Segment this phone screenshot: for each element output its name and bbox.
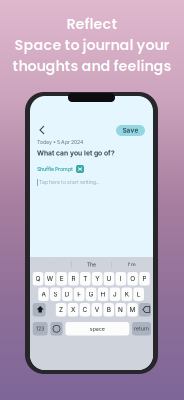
button[interactable]: K xyxy=(121,287,132,301)
staticText: The xyxy=(87,261,96,268)
staticText: space xyxy=(90,326,105,332)
button[interactable]: Shift xyxy=(33,303,46,316)
button[interactable]: Save xyxy=(116,125,145,136)
staticText: E xyxy=(60,275,64,283)
staticText: Save xyxy=(122,127,138,134)
staticText: Space to journal your xyxy=(14,35,169,55)
button[interactable]: M xyxy=(127,303,138,316)
button[interactable]: V xyxy=(91,303,102,316)
button[interactable]: G xyxy=(86,287,96,301)
staticText: H xyxy=(100,290,105,298)
button[interactable]: T xyxy=(80,272,91,285)
staticText: I xyxy=(50,261,51,268)
staticText: L xyxy=(137,290,141,298)
staticText: Reflect xyxy=(66,14,117,34)
staticText: 123 xyxy=(36,326,44,332)
staticText: P xyxy=(142,275,146,283)
button[interactable]: P xyxy=(139,272,150,285)
staticText: I'm xyxy=(128,261,136,268)
staticText: N xyxy=(118,306,123,314)
staticText: thoughts and feelings xyxy=(12,56,171,76)
button[interactable]: L xyxy=(133,287,144,301)
staticText: V xyxy=(95,306,99,314)
button[interactable]: E xyxy=(56,272,67,285)
staticText: A xyxy=(41,290,45,298)
staticText: return xyxy=(134,326,149,332)
button[interactable]: Z xyxy=(56,303,66,316)
button[interactable]: return xyxy=(132,322,151,335)
staticText: T xyxy=(83,275,87,283)
button[interactable]: space xyxy=(65,322,129,335)
staticText: Y xyxy=(95,275,99,283)
button[interactable]: Y xyxy=(92,272,102,285)
button[interactable]: S xyxy=(50,287,61,301)
staticText: Tap here to start writing... xyxy=(39,179,99,185)
button[interactable]: I xyxy=(115,272,126,285)
staticText: Today • 5 Apr 2024 xyxy=(37,139,83,145)
staticText: I xyxy=(120,275,122,283)
staticText: O xyxy=(130,275,135,283)
staticText: What can you let go of? xyxy=(37,149,115,157)
button[interactable]: D xyxy=(62,287,73,301)
button[interactable]: H xyxy=(98,287,108,301)
button[interactable]: C xyxy=(80,303,90,316)
button[interactable]: N xyxy=(115,303,126,316)
button[interactable]: W xyxy=(44,272,55,285)
staticText: X xyxy=(71,306,75,314)
button[interactable]: 123 xyxy=(33,322,48,335)
button[interactable]: O xyxy=(127,272,138,285)
staticText: C xyxy=(82,306,87,314)
button[interactable]: Q xyxy=(33,272,43,285)
button[interactable]: A xyxy=(38,287,49,301)
staticText: M xyxy=(129,306,135,314)
button[interactable]: B xyxy=(103,303,114,316)
button[interactable]: R xyxy=(68,272,79,285)
button[interactable]: F xyxy=(74,287,84,301)
button[interactable]: X xyxy=(68,303,78,316)
button[interactable]: I'm xyxy=(112,257,152,272)
staticText: S xyxy=(53,290,57,298)
staticText: K xyxy=(125,290,129,298)
staticText: W xyxy=(47,275,53,283)
button[interactable]: Back xyxy=(37,123,49,135)
button[interactable]: J xyxy=(110,287,120,301)
staticText: Shuffle Prompt xyxy=(37,166,73,172)
button[interactable]: Delete xyxy=(139,303,151,316)
staticText: Z xyxy=(59,306,63,314)
button[interactable]: Emoji xyxy=(50,322,63,335)
button[interactable]: The xyxy=(71,257,111,272)
staticText: F xyxy=(77,290,81,298)
staticText: R xyxy=(71,275,75,283)
staticText: U xyxy=(106,275,111,283)
staticText: G xyxy=(89,290,94,298)
staticText: D xyxy=(65,290,70,298)
button[interactable]: Shuffle Prompt xyxy=(37,165,84,173)
staticText: J xyxy=(113,290,117,298)
staticText: Q xyxy=(35,275,40,283)
staticText: B xyxy=(107,306,111,314)
button[interactable]: U xyxy=(104,272,114,285)
